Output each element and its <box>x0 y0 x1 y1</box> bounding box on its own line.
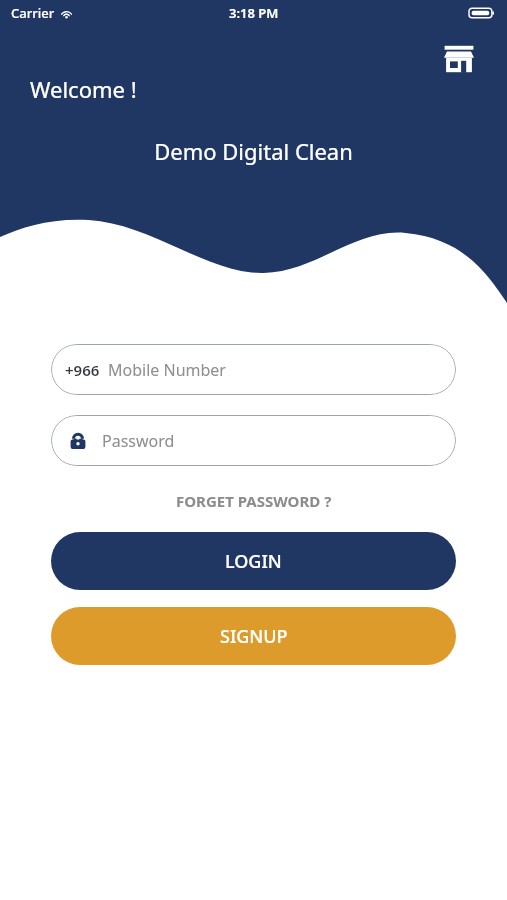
staticText: +966 <box>65 360 100 380</box>
button[interactable]: +966 <box>51 344 456 395</box>
staticText: LOGIN <box>225 549 282 574</box>
staticText: Carrier <box>11 4 55 22</box>
staticText: FORGET PASSWORD ? <box>176 491 332 511</box>
staticText: Demo Digital Clean <box>0 136 507 166</box>
staticText: Mobile Number <box>108 359 226 381</box>
staticText: Password <box>102 430 175 452</box>
button[interactable]: SIGNUP <box>51 607 456 665</box>
button[interactable]: Store <box>436 36 482 82</box>
button[interactable]: LOGIN <box>51 532 456 590</box>
button[interactable]: FORGET PASSWORD ? <box>168 489 340 513</box>
button[interactable]: Password <box>51 415 456 466</box>
staticText: SIGNUP <box>220 624 288 649</box>
staticText: 3:18 PM <box>229 4 279 22</box>
staticText: Welcome ! <box>30 74 137 104</box>
